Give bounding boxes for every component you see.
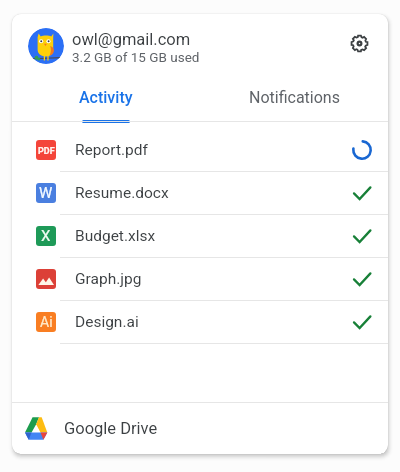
staticText: Notifications — [249, 88, 340, 107]
staticText: Design.ai — [75, 313, 352, 331]
button[interactable]: X — [12, 215, 388, 257]
button[interactable]: Google Drive — [12, 403, 388, 454]
button[interactable]: Settings — [342, 26, 376, 60]
staticText: Google Drive — [64, 419, 158, 438]
staticText: 3.2 GB of 15 GB used — [72, 49, 200, 65]
button[interactable]: Ai — [12, 301, 388, 343]
staticText: owl@gmail.com — [72, 30, 191, 49]
button[interactable]: W — [12, 172, 388, 214]
staticText: Budget.xlsx — [75, 227, 352, 245]
button[interactable]: Notifications — [200, 78, 388, 121]
button[interactable]: Activity — [12, 78, 200, 121]
staticText: W — [39, 184, 53, 202]
button[interactable]: Graph.jpg — [12, 258, 388, 300]
staticText: Resume.docx — [75, 184, 352, 202]
staticText: X — [41, 227, 51, 245]
staticText: Activity — [79, 88, 133, 107]
button[interactable]: PDF — [12, 129, 388, 171]
staticText: PDF — [38, 146, 55, 157]
staticText: Report.pdf — [75, 141, 352, 159]
staticText: Graph.jpg — [75, 270, 352, 288]
staticText: Ai — [40, 314, 53, 330]
